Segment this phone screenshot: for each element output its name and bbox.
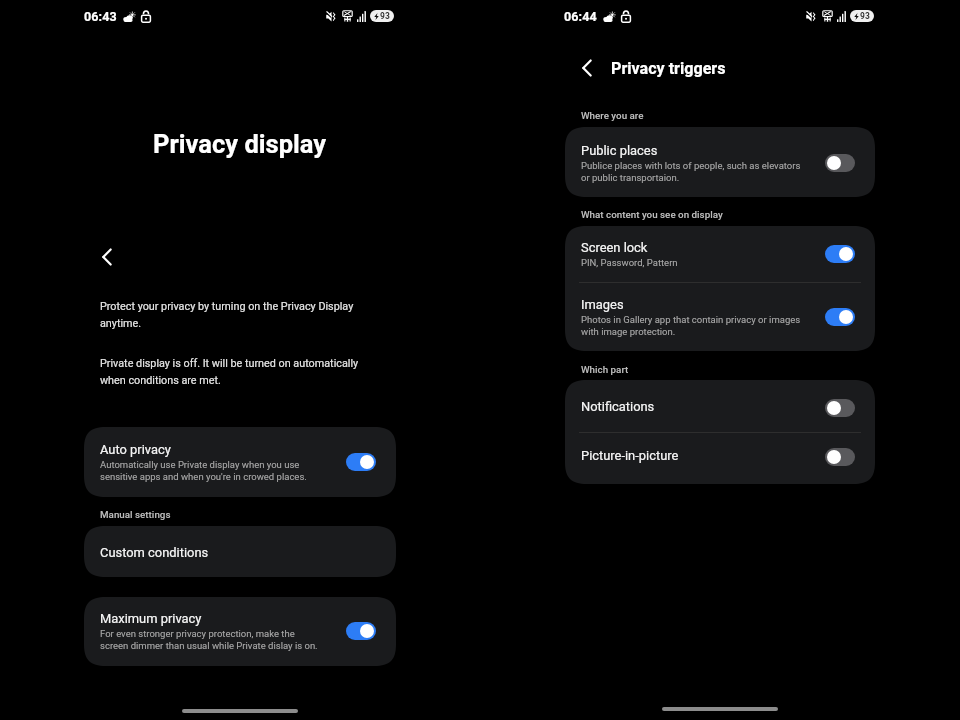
button[interactable]: Back	[94, 244, 120, 270]
staticText: 06:43	[84, 9, 117, 24]
button[interactable]: Picture-in-picture	[565, 433, 875, 484]
button[interactable]: Switch off	[825, 154, 855, 172]
staticText: PIN, Password, Pattern	[581, 257, 678, 268]
button[interactable]: Switch on	[825, 308, 855, 326]
staticText: 93	[860, 11, 870, 21]
button[interactable]: Public places	[565, 127, 875, 197]
staticText: Automatically use Private display when y…	[100, 459, 324, 482]
button[interactable]: Switch on	[825, 245, 855, 263]
button[interactable]: Images	[565, 283, 875, 351]
staticText: For even stronger privacy protection, ma…	[100, 628, 324, 651]
button[interactable]: Switch on	[346, 453, 376, 471]
button[interactable]: Screen lock	[565, 226, 875, 282]
staticText: Auto privacy	[100, 442, 171, 457]
staticText: 06:44	[564, 9, 597, 24]
staticText: Picture-in-picture	[581, 448, 679, 463]
button[interactable]: Notifications	[565, 380, 875, 432]
button[interactable]: Maximum privacy	[84, 597, 396, 666]
staticText: 93	[380, 11, 390, 21]
staticText: Which part	[581, 364, 629, 375]
staticText: Screen lock	[581, 240, 648, 255]
staticText: Privacy display	[153, 129, 327, 159]
button[interactable]: Back	[574, 55, 600, 81]
staticText: Protect your privacy by turning on the P…	[100, 300, 370, 330]
button[interactable]: Auto privacy	[84, 427, 396, 497]
staticText: Maximum privacy	[100, 611, 202, 626]
staticText: Images	[581, 297, 624, 312]
staticText: Where you are	[581, 110, 644, 121]
staticText: Privacy triggers	[611, 59, 726, 78]
button[interactable]: Switch off	[825, 399, 855, 417]
staticText: Custom conditions	[100, 545, 209, 560]
staticText: Publice places with lots of people, such…	[581, 160, 803, 183]
button[interactable]: Switch on	[346, 622, 376, 640]
staticText: Photos in Gallery app that contain priva…	[581, 314, 803, 337]
button[interactable]: Custom conditions	[84, 526, 396, 577]
staticText: Notifications	[581, 399, 655, 414]
staticText: Private display is off. It will be turne…	[100, 357, 370, 387]
button[interactable]: Switch off	[825, 448, 855, 466]
staticText: Public places	[581, 143, 658, 158]
staticText: What content you see on display	[581, 209, 723, 220]
staticText: Manual settings	[100, 509, 171, 520]
